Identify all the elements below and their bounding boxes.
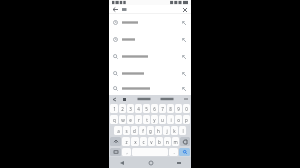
button[interactable]: c [140,137,147,146]
button[interactable]: y [151,115,158,124]
button[interactable]: p [183,115,190,124]
button[interactable]: Back [117,158,126,167]
button[interactable]: b [156,137,163,146]
button[interactable] [122,5,181,14]
button[interactable]: s [123,126,130,135]
button[interactable]: 5 [143,104,150,113]
button[interactable]: , [122,148,131,156]
button[interactable]: q [110,115,118,124]
button[interactable]: Insert query [109,48,191,65]
button[interactable]: 7 [159,104,166,113]
button[interactable]: Insert query [181,54,187,60]
staticText: f [142,128,144,134]
staticText: a [117,128,120,134]
staticText: 5 [145,106,148,112]
staticText: t [146,117,148,123]
staticText: 0 [185,106,188,112]
button[interactable]: Insert query [109,31,191,48]
button[interactable]: Expand [183,96,189,102]
button[interactable]: Back [112,6,119,13]
button[interactable]: 0 [183,104,190,113]
button[interactable]: Search [179,148,190,156]
staticText: q [113,117,116,123]
button[interactable]: 4 [135,104,142,113]
button[interactable]: Insert query [181,71,187,77]
button[interactable]: w [119,115,126,124]
button[interactable]: Insert query [181,37,187,43]
button[interactable]: Backspace [180,137,190,146]
staticText: h [157,128,160,134]
staticText: d [133,128,136,134]
button[interactable]: More [111,96,117,102]
staticText: l [182,128,184,134]
button[interactable]: Home [146,158,155,167]
button[interactable]: k [171,126,178,135]
button[interactable]: 8 [167,104,174,113]
staticText: j [166,128,168,134]
staticText: . [173,149,175,155]
button[interactable]: i [167,115,174,124]
button[interactable]: Recents [174,158,183,167]
staticText: n [166,139,169,145]
button[interactable]: Insert query [109,14,191,31]
button[interactable]: z [122,137,130,146]
staticText: p [185,117,188,123]
button[interactable]: . [169,148,178,156]
staticText: g [149,128,152,134]
button[interactable]: l [179,126,186,135]
button[interactable]: Insert query [109,82,191,95]
staticText: z [125,139,128,145]
button[interactable]: n [164,137,171,146]
staticText: b [158,139,161,145]
button[interactable]: Insert query [181,20,187,26]
staticText: 9 [177,106,180,112]
button[interactable]: Shift [110,137,121,146]
staticText: 8 [169,106,172,112]
staticText: s [125,128,128,134]
button[interactable]: v [148,137,155,146]
staticText: x [134,139,137,145]
staticText: y [153,117,156,123]
button[interactable]: r [135,115,142,124]
staticText: c [142,139,145,145]
button[interactable]: o [175,115,182,124]
staticText: e [129,117,132,123]
staticText: u [161,117,164,123]
staticText: 6 [153,106,156,112]
button[interactable]: 9 [175,104,182,113]
button[interactable]: f [139,126,146,135]
staticText: 3 [129,106,132,112]
button[interactable]: Symbols [110,148,121,156]
button[interactable]: 2 [119,104,126,113]
button[interactable]: e [127,115,134,124]
button[interactable]: h [155,126,162,135]
button[interactable]: x [131,137,139,146]
staticText: v [150,139,153,145]
staticText: w [121,117,125,123]
button[interactable]: 6 [151,104,158,113]
button[interactable]: u [159,115,166,124]
button[interactable]: Clear [181,6,188,13]
button[interactable]: Insert query [109,65,191,82]
button[interactable]: m [172,137,179,146]
staticText: , [126,149,128,155]
button[interactable] [160,96,174,102]
staticText: i [170,117,172,123]
button[interactable] [137,96,151,102]
staticText: k [173,128,176,134]
button[interactable]: t [143,115,150,124]
button[interactable]: Sticker [122,97,127,102]
button[interactable]: 1 [110,104,118,113]
button[interactable]: g [147,126,154,135]
staticText: o [177,117,180,123]
button[interactable]: d [131,126,138,135]
staticText: 1 [113,106,116,112]
staticText: r [138,117,140,123]
button[interactable]: j [163,126,170,135]
staticText: m [173,139,178,145]
button[interactable]: 3 [127,104,134,113]
staticText: 7 [161,106,164,112]
button[interactable]: a [114,126,122,135]
button[interactable]: Insert query [181,86,187,92]
